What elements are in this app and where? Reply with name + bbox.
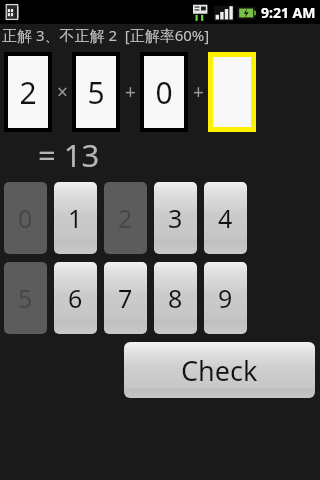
button[interactable]: 2 — [104, 182, 147, 254]
staticText: 8 — [168, 281, 183, 315]
button[interactable]: 2 — [8, 56, 48, 128]
staticText: 5 — [87, 72, 105, 113]
staticText: 6 — [68, 281, 83, 315]
staticText: Check — [181, 352, 258, 389]
button[interactable]: 3 — [154, 182, 197, 254]
button[interactable]: 1 — [54, 182, 97, 254]
staticText: + — [193, 79, 204, 105]
button[interactable]: 7 — [104, 262, 147, 334]
staticText: 2 — [19, 72, 37, 113]
staticText: = 13 — [38, 134, 100, 176]
button[interactable]: 6 — [54, 262, 97, 334]
button[interactable]: 5 — [4, 262, 47, 334]
staticText: 9 — [218, 281, 233, 315]
button[interactable]: 0 — [4, 182, 47, 254]
button[interactable]: 4 — [204, 182, 247, 254]
staticText: 1 — [68, 201, 83, 235]
staticText: + — [125, 79, 136, 105]
staticText: × — [57, 79, 68, 105]
staticText: 7 — [118, 281, 133, 315]
button[interactable]: 5 — [76, 56, 116, 128]
staticText: 3 — [168, 201, 183, 235]
button[interactable]: 8 — [154, 262, 197, 334]
button[interactable]: Check — [124, 342, 315, 398]
button[interactable]: 0 — [144, 56, 184, 128]
staticText: 0 — [155, 72, 173, 113]
staticText: 正解 3、不正解 2 [正解率60%] — [2, 25, 210, 45]
staticText: 2 — [118, 201, 133, 235]
staticText: 5 — [18, 281, 33, 315]
staticText: 0 — [18, 201, 33, 235]
staticText: 9:21 AM — [261, 3, 316, 22]
button[interactable]: 9 — [204, 262, 247, 334]
staticText: 4 — [218, 201, 233, 235]
